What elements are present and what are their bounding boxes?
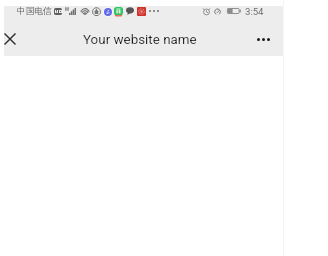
button[interactable]: Close	[0, 21, 20, 56]
staticText: 3:54	[245, 6, 264, 17]
button[interactable]: More options	[249, 22, 277, 57]
staticText: 中国电信	[17, 6, 52, 17]
staticText: Your website name	[83, 32, 197, 48]
